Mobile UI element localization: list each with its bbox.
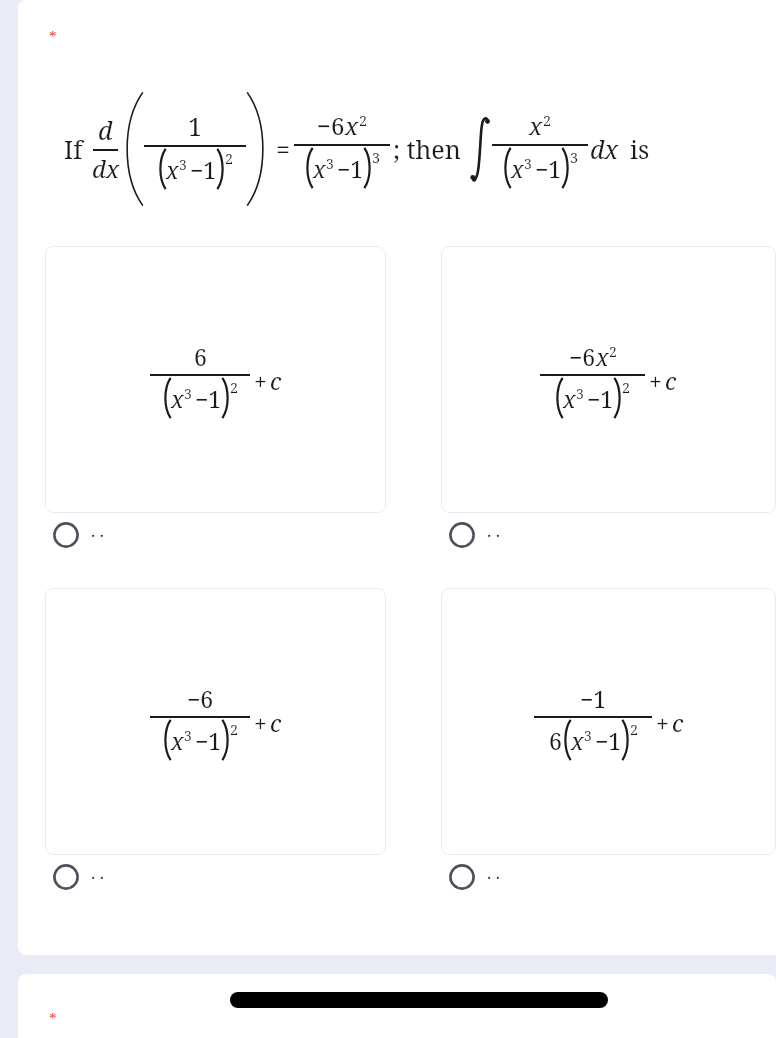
staticText: is xyxy=(630,132,650,166)
staticText: 3 xyxy=(570,148,578,167)
staticText: 3 xyxy=(584,726,592,745)
button[interactable]: Select option D xyxy=(441,855,500,899)
staticText: 2 xyxy=(359,111,368,131)
staticText: −1 xyxy=(190,154,217,185)
staticText: x xyxy=(166,154,179,185)
staticText: 3 xyxy=(184,726,192,745)
staticText: 2 xyxy=(630,720,638,739)
staticText: 2 xyxy=(622,378,630,397)
staticText: d xyxy=(98,113,113,147)
staticText: −1 xyxy=(580,683,607,714)
button[interactable]: −6 xyxy=(441,246,776,513)
staticText: + xyxy=(254,707,267,738)
staticText: · · xyxy=(91,866,104,889)
staticText: If xyxy=(64,132,83,166)
staticText: 3 xyxy=(524,154,532,173)
staticText: 3 xyxy=(576,384,584,403)
staticText: x xyxy=(313,153,326,184)
staticText: x xyxy=(563,383,576,414)
staticText: 3 xyxy=(326,154,334,173)
staticText: 3 xyxy=(372,148,380,167)
staticText: · · xyxy=(487,866,500,889)
staticText: c xyxy=(270,707,282,738)
staticText: x xyxy=(171,383,184,414)
staticText: 6 xyxy=(549,725,562,756)
staticText: = xyxy=(276,132,290,166)
staticText: 2 xyxy=(609,342,617,361)
staticText: x xyxy=(571,725,584,756)
button[interactable]: Select option C xyxy=(45,855,104,899)
staticText: 2 xyxy=(225,149,233,168)
staticText: −6 xyxy=(187,683,214,714)
button[interactable]: Select option B xyxy=(441,513,500,557)
staticText: x xyxy=(171,725,184,756)
staticText: ; then xyxy=(393,132,461,166)
staticText: −1 xyxy=(195,383,222,414)
staticText: c xyxy=(665,365,677,396)
staticText: x xyxy=(345,109,359,142)
staticText: + xyxy=(254,365,267,396)
staticText: c xyxy=(672,707,684,738)
staticText: 3 xyxy=(179,155,187,174)
button[interactable]: −6 xyxy=(45,588,386,855)
staticText: x xyxy=(511,153,524,184)
staticText: 3 xyxy=(184,384,192,403)
staticText: 2 xyxy=(230,720,238,739)
staticText: dx xyxy=(92,152,119,185)
staticText: −1 xyxy=(587,383,614,414)
staticText: −1 xyxy=(595,725,622,756)
staticText: · · xyxy=(487,524,500,547)
staticText: x xyxy=(596,341,609,372)
staticText: * xyxy=(49,1008,57,1028)
button[interactable]: −1 xyxy=(441,588,776,855)
staticText: · · xyxy=(91,524,104,547)
staticText: −1 xyxy=(535,153,562,184)
staticText: + xyxy=(649,365,662,396)
staticText: −6 xyxy=(317,109,345,142)
staticText: x xyxy=(529,109,543,142)
staticText: 2 xyxy=(543,111,552,131)
button[interactable]: 6 xyxy=(45,246,386,513)
staticText: * xyxy=(49,26,57,46)
staticText: 2 xyxy=(230,378,238,397)
staticText: −1 xyxy=(337,153,364,184)
staticText: dx xyxy=(590,132,619,166)
staticText: −1 xyxy=(195,725,222,756)
staticText: c xyxy=(270,365,282,396)
staticText: + xyxy=(656,707,669,738)
staticText: −6 xyxy=(569,341,596,372)
staticText: 1 xyxy=(188,109,202,143)
button[interactable]: Select option A xyxy=(45,513,104,557)
staticText: 6 xyxy=(194,341,207,372)
